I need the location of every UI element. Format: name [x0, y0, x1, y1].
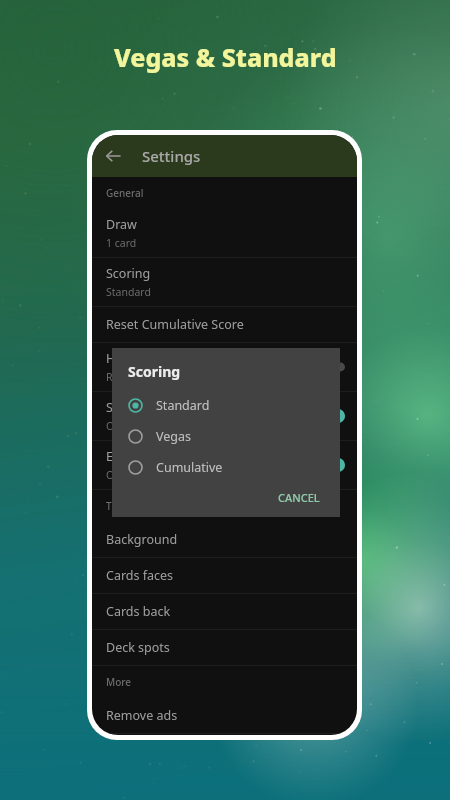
staticText: Deck spots [106, 639, 170, 656]
button[interactable]: Draw [92, 209, 357, 257]
staticText: 1 card [106, 236, 137, 250]
staticText: Draw [106, 216, 137, 233]
button[interactable]: Remove ads [92, 698, 357, 733]
staticText: Vegas & Standard [114, 40, 337, 74]
button[interactable]: CANCEL [272, 487, 326, 508]
staticText: Theme [106, 499, 139, 513]
staticText: Vegas [156, 428, 191, 445]
button[interactable]: Cards faces [92, 558, 357, 593]
button[interactable]: Background [92, 522, 357, 557]
button[interactable]: Back [92, 135, 134, 177]
button[interactable]: Vegas [112, 421, 340, 452]
staticText: Cards back [106, 603, 171, 620]
button[interactable]: Cards back [92, 594, 357, 629]
button[interactable]: Hints [92, 343, 357, 391]
staticText: Reset Cumulative Score [106, 316, 244, 333]
staticText: Scoring [128, 362, 181, 381]
staticText: Background [106, 531, 178, 548]
button[interactable]: Cumulative [112, 452, 340, 483]
staticText: On [106, 419, 121, 433]
staticText: Scoring [106, 265, 151, 282]
staticText: Cards faces [106, 567, 174, 584]
button[interactable]: Sound [92, 392, 357, 440]
staticText: Standard [156, 397, 210, 414]
staticText: Off [106, 468, 122, 482]
button[interactable]: Scoring [92, 258, 357, 306]
button[interactable]: Extra [92, 441, 357, 489]
staticText: General [106, 186, 144, 200]
button[interactable]: Deck spots [92, 630, 357, 665]
staticText: Hints [106, 350, 137, 367]
staticText: More [106, 675, 132, 689]
staticText: Remove ads [106, 707, 178, 724]
button[interactable]: Reset Cumulative Score [92, 307, 357, 342]
staticText: Reserved [106, 370, 152, 384]
staticText: Standard [106, 285, 151, 299]
staticText: Extra [106, 448, 137, 465]
button[interactable]: Standard [112, 390, 340, 421]
staticText: Cumulative [156, 459, 223, 476]
staticText: Settings [142, 146, 201, 166]
staticText: Sound [106, 399, 144, 416]
staticText: CANCEL [278, 490, 320, 505]
